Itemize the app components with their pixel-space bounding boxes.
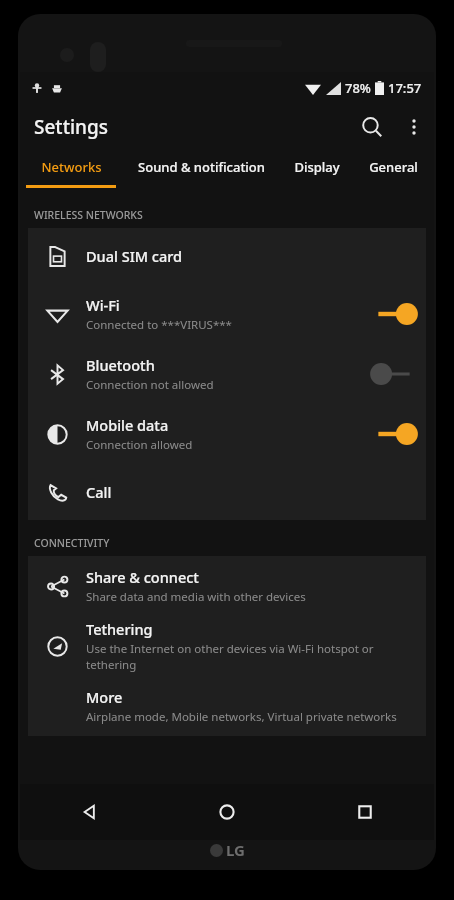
button[interactable]: Display xyxy=(280,150,354,190)
button[interactable]: Dual SIM card xyxy=(28,228,426,284)
button[interactable]: Mobile data xyxy=(28,404,426,464)
button[interactable]: Home xyxy=(158,784,296,840)
staticText: Networks xyxy=(41,158,102,176)
staticText: Call xyxy=(86,482,112,502)
staticText: Wi-Fi xyxy=(86,295,120,315)
button[interactable]: More options xyxy=(394,107,434,147)
staticText: Connection not allowed xyxy=(86,377,214,393)
button[interactable]: Search xyxy=(350,105,394,149)
button[interactable]: Recents xyxy=(296,784,434,840)
button[interactable]: Bluetooth xyxy=(28,344,426,404)
staticText: Share data and media with other devices xyxy=(86,589,306,605)
staticText: Tethering xyxy=(86,619,153,639)
button[interactable]: Tethering xyxy=(28,616,426,676)
staticText: Airplane mode, Mobile networks, Virtual … xyxy=(86,709,397,725)
staticText: Settings xyxy=(34,114,108,140)
staticText: General xyxy=(369,158,418,176)
staticText: CONNECTIVITY xyxy=(34,536,110,550)
staticText: Dual SIM card xyxy=(86,246,183,266)
staticText: 17:57 xyxy=(388,79,422,97)
button[interactable]: Wi-Fi xyxy=(28,284,426,344)
button[interactable]: Sound & notification xyxy=(122,150,280,190)
button[interactable]: More xyxy=(28,676,426,736)
staticText: Use the Internet on other devices via Wi… xyxy=(86,641,414,673)
staticText: Mobile data xyxy=(86,415,169,435)
button[interactable]: Networks xyxy=(20,150,122,190)
staticText: Share & connect xyxy=(86,567,199,587)
staticText: Display xyxy=(294,158,340,176)
button[interactable]: Call xyxy=(28,464,426,520)
button[interactable]: Share & connect xyxy=(28,556,426,616)
button[interactable]: General xyxy=(354,150,432,190)
staticText: Sound & notification xyxy=(138,158,265,176)
button[interactable]: Mobile data toggle xyxy=(362,412,426,456)
button[interactable]: Wi-Fi toggle xyxy=(362,292,426,336)
staticText: More xyxy=(86,687,123,707)
staticText: LG xyxy=(226,840,245,860)
button[interactable]: Back xyxy=(20,784,158,840)
staticText: WIRELESS NETWORKS xyxy=(34,208,143,222)
staticText: Connection allowed xyxy=(86,437,193,453)
staticText: 78% xyxy=(345,79,371,97)
button[interactable]: Bluetooth toggle xyxy=(362,352,426,396)
staticText: Connected to ***VIRUS*** xyxy=(86,317,232,333)
staticText: Bluetooth xyxy=(86,355,155,375)
